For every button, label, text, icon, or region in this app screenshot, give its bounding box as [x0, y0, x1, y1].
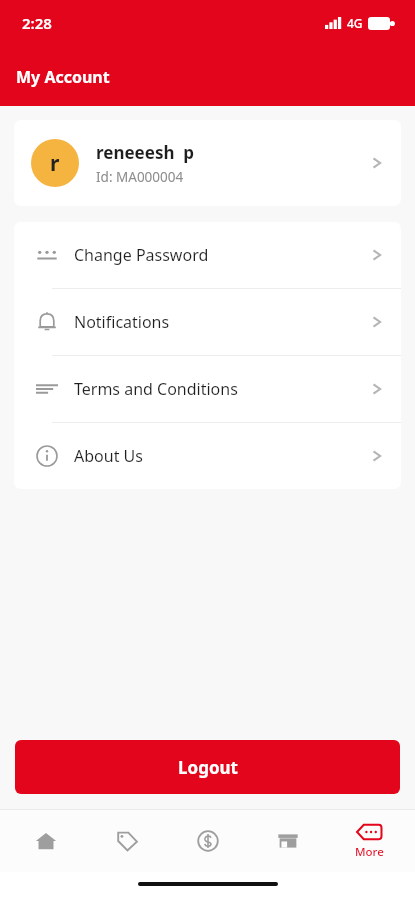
button[interactable]: About Us: [14, 423, 401, 489]
staticText: Terms and Conditions: [74, 378, 370, 400]
staticText: Logout: [178, 756, 238, 779]
button[interactable]: Offers: [92, 810, 162, 872]
staticText: More: [355, 844, 384, 860]
button[interactable]: Change Password: [14, 222, 401, 288]
staticText: 4G: [347, 15, 363, 31]
staticText: About Us: [74, 445, 370, 467]
staticText: reneeesh p: [96, 141, 195, 164]
button[interactable]: r: [14, 120, 401, 206]
button[interactable]: Store: [253, 810, 323, 872]
button[interactable]: Home: [11, 810, 81, 872]
staticText: 2:28: [22, 13, 52, 33]
staticText: r: [50, 149, 60, 178]
staticText: Change Password: [74, 244, 370, 266]
button[interactable]: Logout: [15, 740, 400, 794]
staticText: My Account: [16, 66, 110, 88]
button[interactable]: Notifications: [14, 289, 401, 355]
staticText: Notifications: [74, 311, 370, 333]
staticText: Id: MA000004: [96, 168, 184, 186]
button[interactable]: More: [334, 810, 404, 872]
button[interactable]: Payments: [173, 810, 243, 872]
button[interactable]: Terms and Conditions: [14, 356, 401, 422]
